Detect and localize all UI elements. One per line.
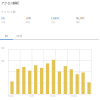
staticText: 1,064: [51, 17, 59, 20]
staticText: 11/22: [50, 95, 55, 98]
staticText: 11/21: [29, 95, 34, 98]
button[interactable]: 時間: [13, 33, 26, 39]
button[interactable]: 日: [0, 33, 13, 39]
staticText: 16,411: [76, 17, 84, 20]
staticText: 累計: [76, 21, 80, 24]
staticText: アクセス数: [1, 10, 16, 14]
staticText: 昨日: [26, 21, 30, 24]
staticText: 373: [26, 17, 31, 20]
staticText: 11/20: [8, 95, 13, 98]
staticText: アクセス解析: [1, 1, 19, 5]
staticText: 250: [1, 60, 4, 63]
staticText: 今月: [51, 21, 55, 24]
staticText: 11/23: [71, 95, 76, 98]
staticText: 今日: [1, 21, 5, 24]
staticText: 500: [1, 47, 4, 50]
staticText: 日: [5, 34, 8, 38]
staticText: 時間: [16, 34, 22, 38]
staticText: 25: [1, 17, 5, 20]
